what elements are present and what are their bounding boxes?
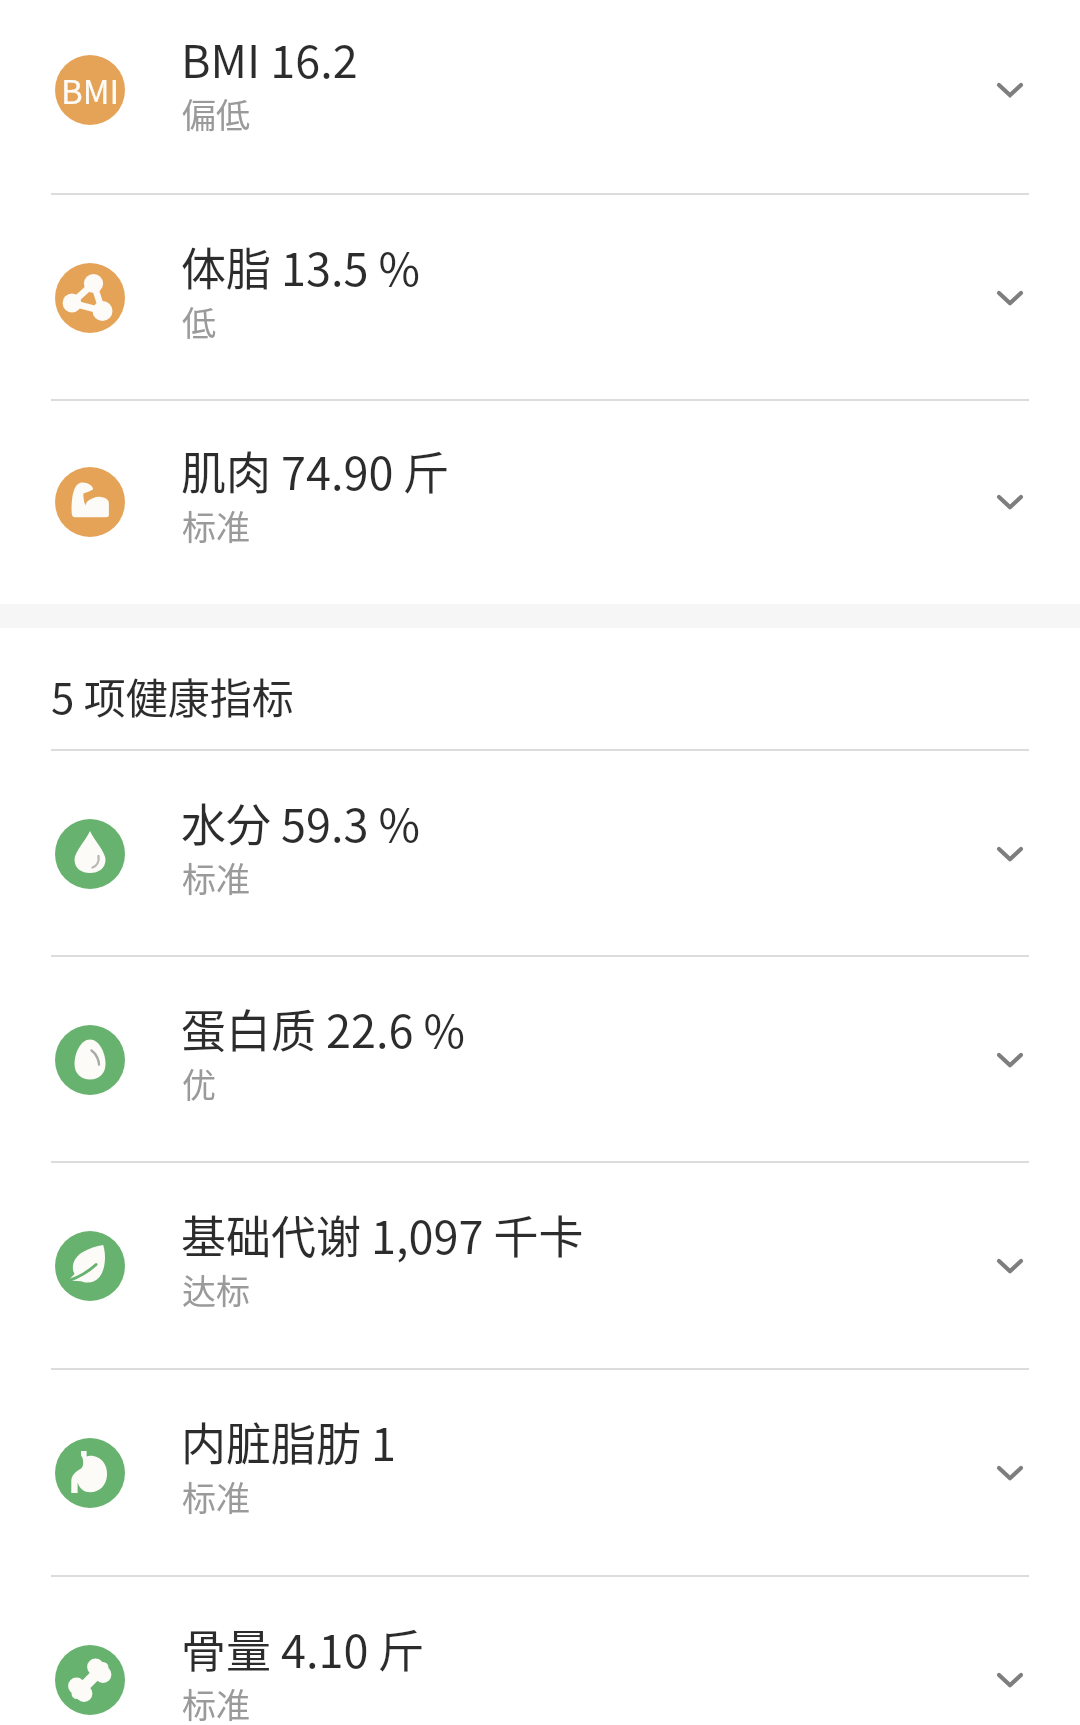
- button[interactable]: Expand details: [960, 452, 1060, 552]
- staticText: 低: [182, 297, 216, 346]
- staticText: 标准: [182, 1472, 250, 1521]
- button[interactable]: 肌肉 74.90 斤: [0, 401, 1080, 604]
- button[interactable]: 水分 59.3 %: [0, 751, 1080, 957]
- button[interactable]: Expand details: [960, 1216, 1060, 1316]
- staticText: 偏低: [182, 89, 250, 138]
- button[interactable]: Expand details: [960, 1423, 1060, 1523]
- staticText: 水分 59.3 %: [181, 790, 421, 855]
- button[interactable]: 基础代谢 1,097 千卡: [0, 1163, 1080, 1370]
- staticText: 标准: [182, 1679, 250, 1725]
- button[interactable]: 体脂 13.5 %: [0, 195, 1080, 401]
- staticText: 5 项健康指标: [51, 665, 294, 726]
- staticText: 蛋白质 22.6 %: [181, 996, 466, 1061]
- staticText: 标准: [182, 501, 250, 550]
- staticText: 标准: [182, 853, 250, 902]
- staticText: 达标: [182, 1265, 250, 1314]
- button[interactable]: 内脏脂肪 1: [0, 1370, 1080, 1577]
- staticText: 内脏脂肪 1: [181, 1409, 397, 1474]
- staticText: 骨量 4.10 斤: [181, 1616, 424, 1681]
- staticText: 肌肉 74.90 斤: [181, 438, 449, 503]
- button[interactable]: Expand details: [960, 248, 1060, 348]
- staticText: 基础代谢 1,097 千卡: [181, 1202, 584, 1267]
- button[interactable]: 骨量 4.10 斤: [0, 1577, 1080, 1725]
- button[interactable]: Expand details: [960, 804, 1060, 904]
- button[interactable]: Expand details: [960, 1630, 1060, 1725]
- button[interactable]: 蛋白质 22.6 %: [0, 957, 1080, 1163]
- button[interactable]: BMI: [0, 0, 1080, 195]
- staticText: 优: [182, 1059, 216, 1108]
- staticText: BMI 16.2: [181, 26, 358, 91]
- staticText: BMI: [61, 66, 120, 114]
- button[interactable]: Expand details: [960, 1010, 1060, 1110]
- button[interactable]: Expand details: [960, 40, 1060, 140]
- staticText: 体脂 13.5 %: [181, 234, 421, 299]
